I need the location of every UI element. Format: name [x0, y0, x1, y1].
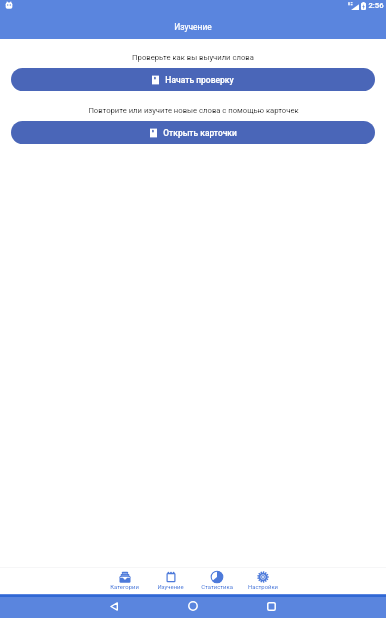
staticText: Статистика [201, 584, 233, 591]
button[interactable]: Recent apps [261, 596, 281, 616]
button[interactable]: Изучение [147, 567, 193, 594]
button[interactable]: Статистика [194, 567, 240, 594]
staticText: 2:56 [368, 1, 384, 10]
staticText: Начать проверку [165, 75, 234, 85]
button[interactable]: Настройки [240, 567, 286, 594]
staticText: Изучение [157, 584, 184, 591]
button[interactable]: Открыть карточки [11, 121, 375, 144]
button[interactable]: Категории [101, 567, 147, 594]
staticText: Проверьте как вы выучили слова [132, 53, 254, 62]
staticText: Открыть карточки [163, 128, 237, 138]
staticText: Категории [110, 584, 139, 591]
staticText: Повторите или изучите новые слова с помо… [88, 106, 299, 115]
staticText: Изучение [174, 22, 212, 32]
staticText: Настройки [248, 584, 278, 591]
button[interactable]: Начать проверку [11, 68, 375, 91]
button[interactable]: Back [104, 596, 124, 616]
button[interactable]: Home [183, 596, 203, 616]
